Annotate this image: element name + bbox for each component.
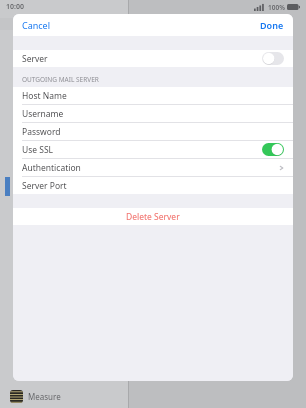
- staticText: 10:00: [6, 2, 24, 12]
- button[interactable]: Username: [13, 105, 293, 122]
- button[interactable]: Password: [13, 123, 293, 140]
- staticText: Cancel: [22, 19, 51, 31]
- button[interactable]: Server Port: [13, 177, 293, 194]
- button[interactable]: Host Name: [13, 87, 293, 104]
- staticText: Password: [22, 126, 61, 138]
- staticText: Server: [22, 53, 48, 65]
- staticText: 100%: [268, 3, 285, 12]
- staticText: Delete Server: [126, 211, 180, 223]
- staticText: OUTGOING MAIL SERVER: [22, 75, 99, 84]
- button[interactable]: Server: [13, 50, 293, 67]
- button[interactable]: Switch off: [262, 52, 284, 65]
- button[interactable]: Done: [251, 15, 293, 35]
- staticText: Server Port: [22, 180, 67, 192]
- staticText: Use SSL: [22, 144, 54, 156]
- button[interactable]: Switch on: [262, 143, 284, 156]
- staticText: Measure: [28, 391, 61, 402]
- staticText: Done: [260, 19, 284, 31]
- button[interactable]: Use SSL: [13, 141, 293, 158]
- staticText: Username: [22, 108, 64, 120]
- button[interactable]: Authentication: [13, 159, 293, 176]
- staticText: Host Name: [22, 90, 67, 102]
- staticText: Authentication: [22, 162, 81, 174]
- button[interactable]: Delete Server: [13, 208, 293, 225]
- button[interactable]: Cancel: [13, 15, 60, 35]
